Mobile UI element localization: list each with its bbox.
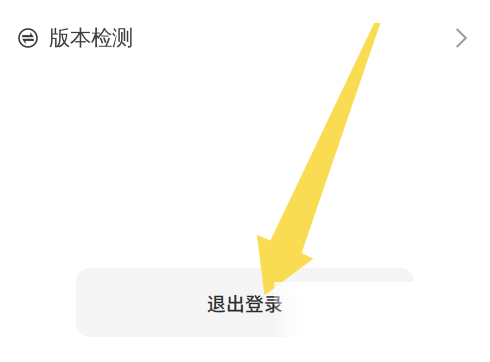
staticText: 版本检测 [49,25,133,51]
staticText: 退出登录 [207,289,283,316]
button[interactable]: 版本检测 [0,0,490,76]
button[interactable]: 退出登录 [76,268,414,337]
